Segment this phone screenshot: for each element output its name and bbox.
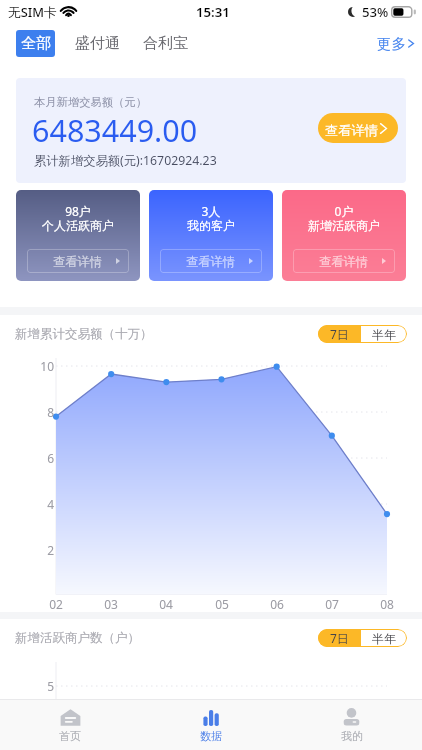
button[interactable]: 半年 xyxy=(361,629,407,647)
button[interactable]: 查看详情 xyxy=(27,249,129,273)
staticText: 05 xyxy=(208,596,236,612)
button[interactable]: 我的 xyxy=(281,700,422,750)
staticText: 7日 xyxy=(330,630,349,646)
staticText: 02 xyxy=(42,596,70,612)
staticText: 10 xyxy=(29,358,54,374)
staticText: 无SIM卡 xyxy=(8,3,57,20)
other: 数据 xyxy=(201,708,221,727)
staticText: 03 xyxy=(97,596,125,612)
staticText: 53% xyxy=(362,3,389,21)
staticText: 查看详情 xyxy=(319,254,369,269)
button[interactable]: 查看详情 xyxy=(318,113,398,143)
staticText: 2 xyxy=(29,542,54,558)
button[interactable]: 7日 xyxy=(318,325,361,343)
button[interactable]: 查看详情 xyxy=(293,249,395,273)
button[interactable]: 98户 xyxy=(16,190,140,281)
staticText: 98户 xyxy=(16,203,140,219)
staticText: 盛付通 xyxy=(75,34,120,53)
staticText: 15:31 xyxy=(196,3,230,21)
staticText: 累计新增交易额(元):16702924.23 xyxy=(34,152,217,169)
staticText: 新增活跃商户数（户） xyxy=(15,630,140,646)
staticText: 新增活跃商户 xyxy=(282,218,406,233)
button[interactable]: 0户 xyxy=(282,190,406,281)
staticText: 6483449.00 xyxy=(32,109,198,151)
staticText: 首页 xyxy=(59,729,81,743)
staticText: 我的客户 xyxy=(149,218,273,233)
button[interactable]: 数据 xyxy=(140,700,281,750)
staticText: 个人活跃商户 xyxy=(16,218,140,233)
staticText: 半年 xyxy=(372,631,396,646)
staticText: 6 xyxy=(29,450,54,466)
staticText: 06 xyxy=(263,596,291,612)
staticText: 0户 xyxy=(282,203,406,219)
button[interactable]: 更多 xyxy=(377,30,415,57)
staticText: 我的 xyxy=(341,729,363,743)
staticText: 查看详情 xyxy=(186,254,236,269)
staticText: 半年 xyxy=(372,327,396,342)
staticText: 数据 xyxy=(200,729,222,743)
button[interactable]: 全部 xyxy=(16,30,55,57)
staticText: 本月新增交易额（元） xyxy=(34,95,147,109)
staticText: 查看详情 xyxy=(53,254,103,269)
staticText: 04 xyxy=(152,596,180,612)
other: 首页 xyxy=(60,708,81,727)
staticText: 合利宝 xyxy=(143,34,188,53)
button[interactable]: 首页 xyxy=(0,700,140,750)
other: 我的 xyxy=(341,708,362,727)
button[interactable]: 本月新增交易额（元） xyxy=(16,78,406,183)
button[interactable]: 3人 xyxy=(149,190,273,281)
staticText: 07 xyxy=(318,596,346,612)
button[interactable]: 7日 xyxy=(318,629,361,647)
staticText: 更多 xyxy=(377,35,406,53)
button[interactable]: 半年 xyxy=(361,325,407,343)
staticText: 4 xyxy=(29,496,54,512)
button[interactable]: 合利宝 xyxy=(138,30,192,57)
staticText: 全部 xyxy=(21,34,51,53)
staticText: 8 xyxy=(29,404,54,420)
staticText: 5 xyxy=(29,678,54,694)
button[interactable]: 盛付通 xyxy=(70,30,124,57)
staticText: 查看详情 xyxy=(325,122,378,139)
staticText: 新增累计交易额（十万） xyxy=(15,326,153,342)
button[interactable]: 查看详情 xyxy=(160,249,262,273)
staticText: 3人 xyxy=(149,203,273,219)
staticText: 7日 xyxy=(330,326,349,342)
staticText: 08 xyxy=(373,596,401,612)
